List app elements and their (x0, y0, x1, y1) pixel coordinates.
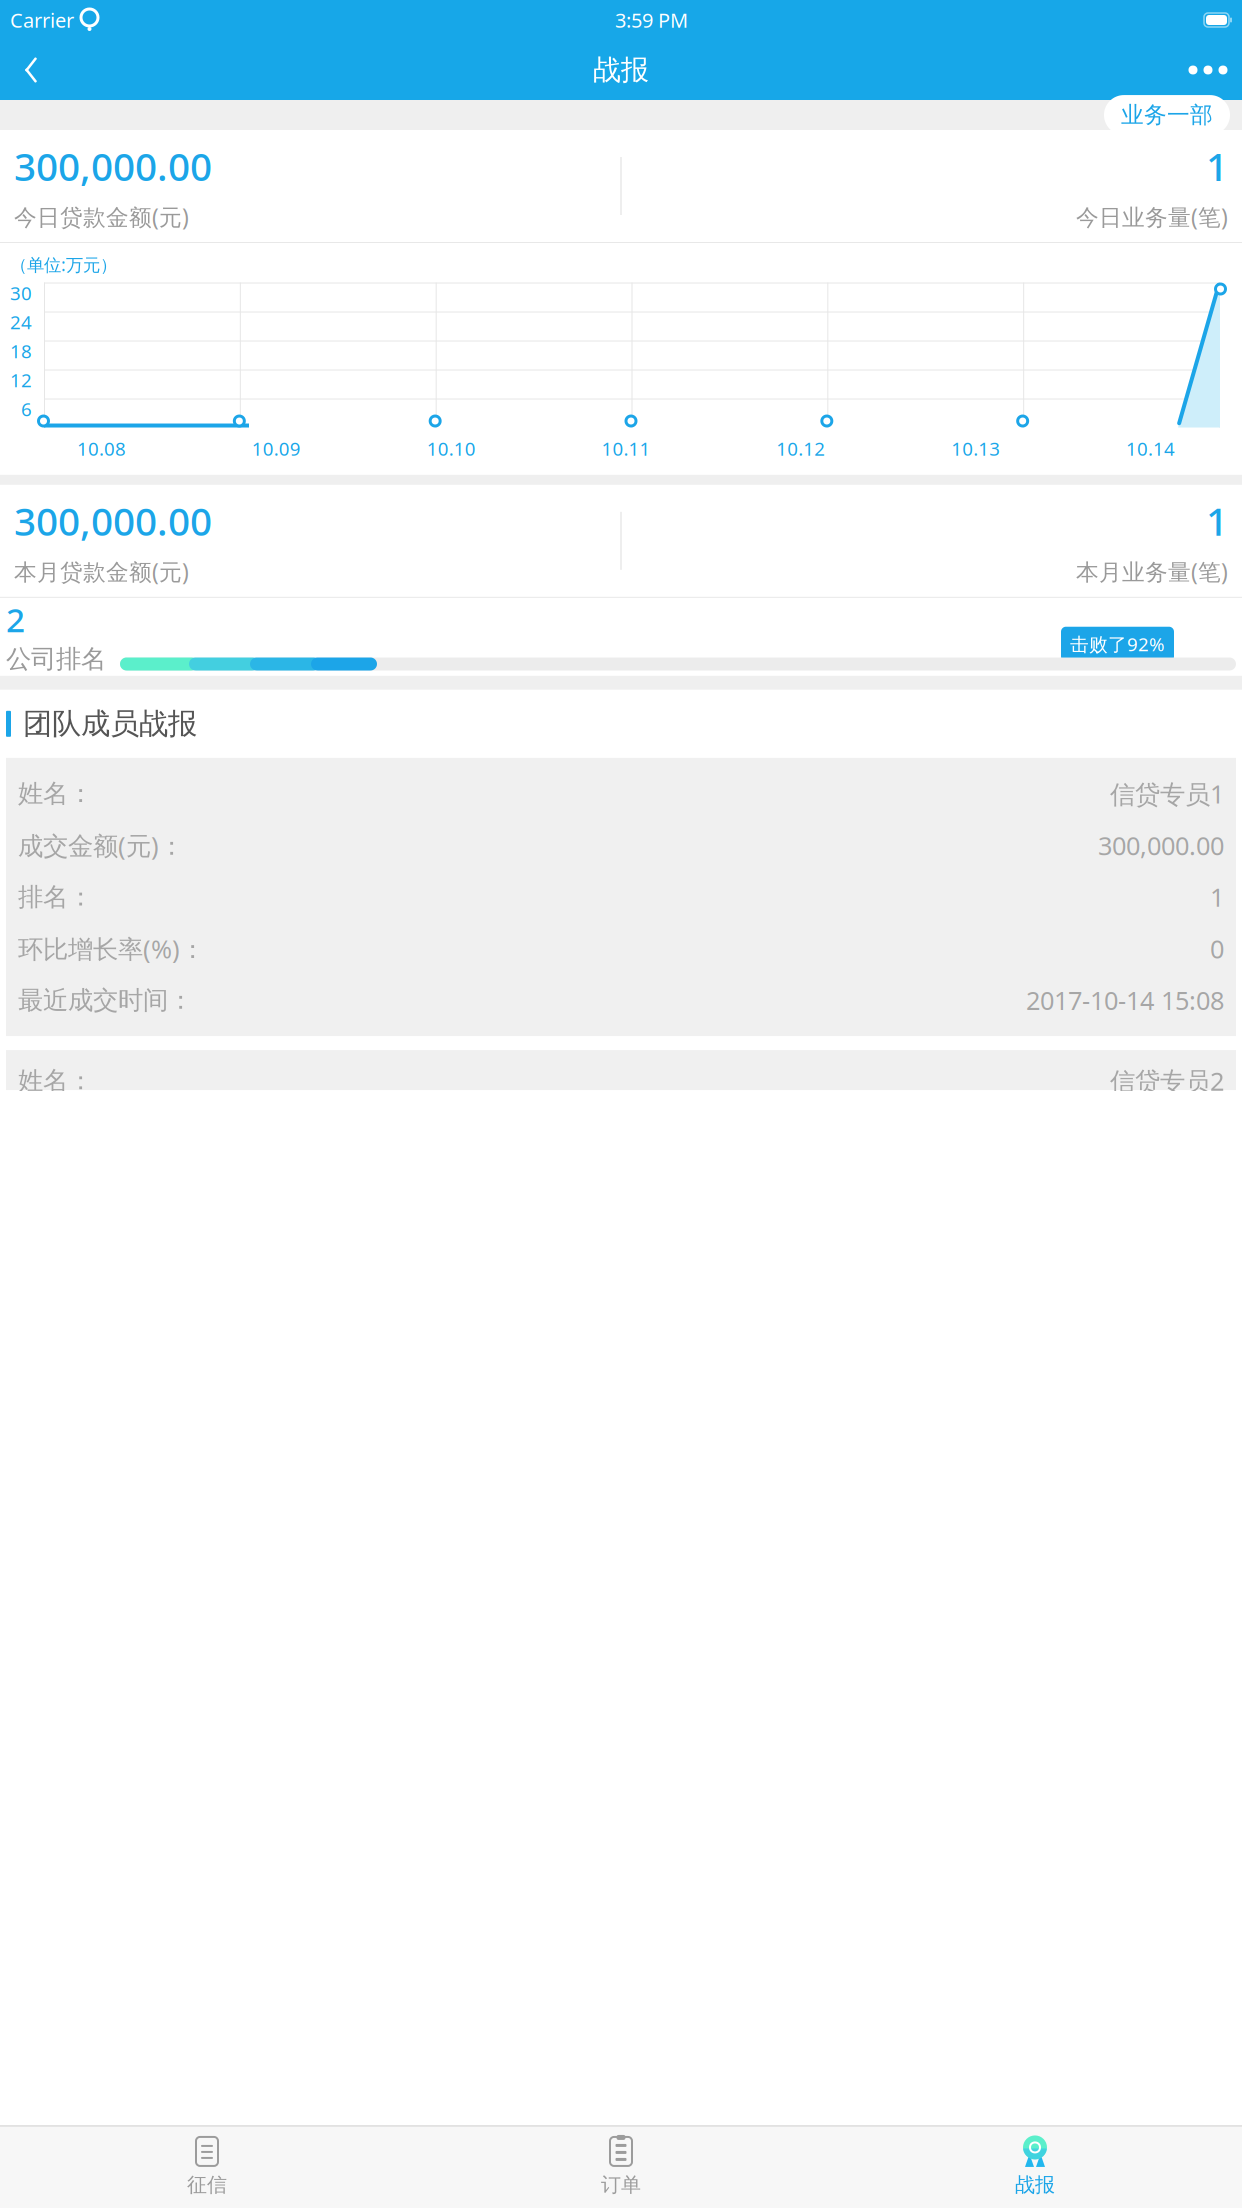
staticText: 1 (1206, 140, 1228, 192)
staticText: 成交金额(元)： (18, 828, 184, 862)
staticText: 10.10 (427, 436, 476, 461)
staticText: 300,000.00 (14, 495, 212, 546)
staticText: 排名： (18, 881, 93, 912)
button[interactable]: 姓名： (0, 758, 1242, 1036)
button[interactable]: 更多 (1178, 46, 1238, 94)
staticText: 战报 (1015, 2172, 1055, 2197)
staticText: 10.13 (951, 436, 1000, 461)
staticText: 3:59 PM (615, 7, 688, 33)
staticText: 2017-10-14 15:08 (1026, 983, 1224, 1017)
staticText: 本月业务量(笔) (1076, 556, 1228, 586)
staticText: 战报 (593, 53, 649, 87)
staticText: 订单 (601, 2172, 641, 2197)
button[interactable]: 返回 (4, 46, 58, 94)
staticText: 2 (6, 597, 25, 641)
staticText: 信贷专员1 (1110, 777, 1224, 810)
staticText: 姓名： (18, 778, 93, 809)
staticText: 业务一部 (1121, 101, 1213, 129)
staticText: 10.14 (1126, 436, 1175, 461)
staticText: 公司排名 (6, 643, 106, 674)
button[interactable]: 战报 (828, 2132, 1242, 2200)
staticText: 12 (10, 368, 32, 392)
staticText: 24 (10, 310, 32, 334)
staticText: 最近成交时间： (18, 985, 193, 1016)
staticText: 10.12 (776, 436, 825, 461)
staticText: 信贷专员2 (1110, 1064, 1224, 1098)
staticText: 团队成员战报 (23, 706, 197, 742)
button[interactable]: 业务一部 (1104, 95, 1230, 135)
staticText: 征信 (187, 2172, 227, 2197)
staticText: 姓名： (18, 1065, 93, 1096)
staticText: 6 (21, 397, 32, 421)
staticText: 300,000.00 (14, 140, 212, 192)
button[interactable]: 征信 (0, 2132, 414, 2200)
staticText: 10.08 (77, 436, 126, 461)
staticText: 今日贷款金额(元) (14, 202, 189, 232)
staticText: 击败了92% (1070, 632, 1165, 656)
button[interactable]: 订单 (414, 2132, 828, 2200)
staticText: Carrier (10, 7, 74, 33)
staticText: 10.09 (252, 436, 301, 461)
staticText: 18 (10, 339, 32, 363)
staticText: 30 (10, 281, 32, 305)
staticText: 本月贷款金额(元) (14, 556, 189, 586)
staticText: 300,000.00 (1098, 828, 1224, 862)
staticText: （单位:万元） (10, 253, 117, 276)
staticText: 1 (1210, 880, 1224, 914)
staticText: 0 (1210, 932, 1224, 965)
staticText: 环比增长率(%)： (18, 932, 205, 965)
staticText: 10.11 (601, 436, 650, 461)
staticText: 1 (1206, 495, 1228, 546)
staticText: 今日业务量(笔) (1076, 202, 1228, 232)
